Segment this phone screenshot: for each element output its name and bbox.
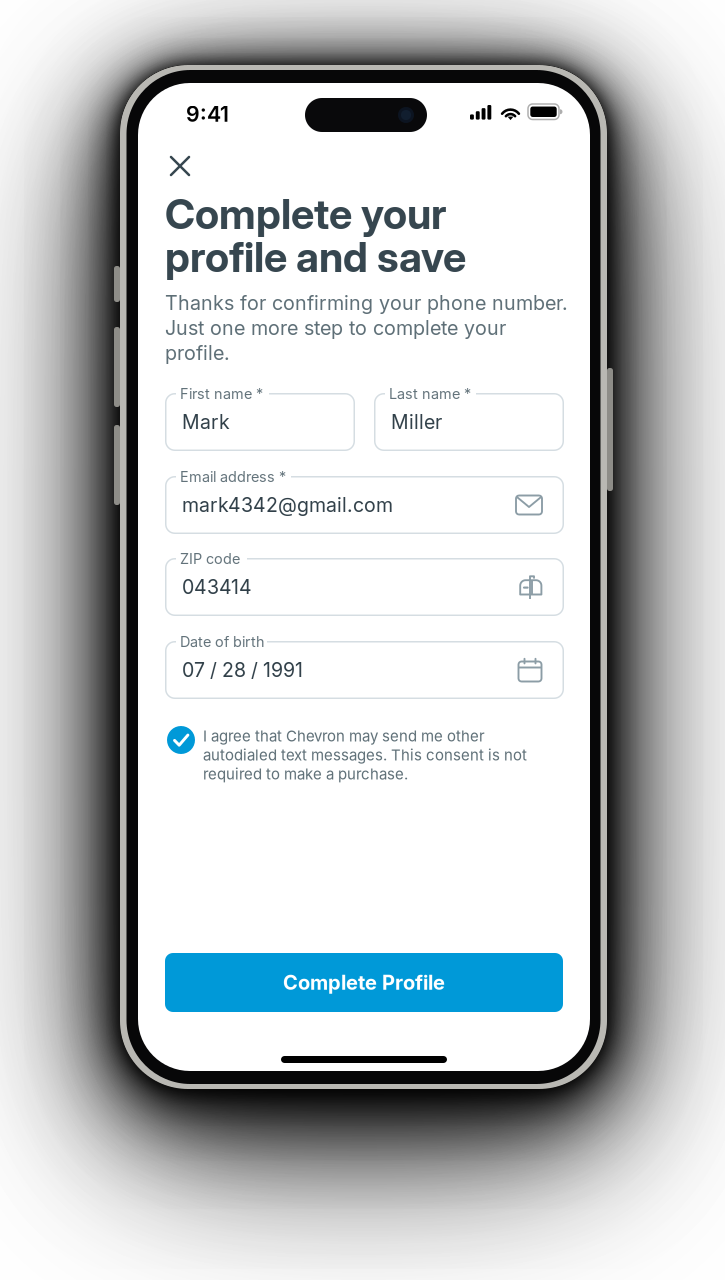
staticText: profile and save [165, 232, 466, 282]
staticText: 07 / 28 / 1991 [182, 658, 303, 682]
staticText: Email address * [180, 468, 286, 485]
button[interactable]: I agree that Chevron may send me other [167, 726, 566, 801]
staticText: Miller [391, 410, 442, 434]
button[interactable]: 043414 [165, 558, 564, 616]
staticText: Thanks for confirming your phone number. [165, 291, 568, 315]
staticText: First name * [180, 385, 263, 402]
button[interactable]: Miller [374, 393, 564, 451]
staticText: Last name * [389, 385, 471, 402]
staticText: Complete your [165, 189, 447, 239]
staticText: 043414 [182, 575, 252, 599]
button[interactable]: Close [160, 145, 210, 189]
staticText: mark4342@gmail.com [182, 493, 393, 517]
staticText: Mark [182, 410, 230, 434]
staticText: Just one more step to complete your [165, 316, 506, 340]
staticText: Complete Profile [283, 970, 445, 995]
staticText: profile. [165, 341, 230, 365]
staticText: 9:41 [186, 101, 229, 127]
button[interactable]: 07 / 28 / 1991 [165, 641, 564, 699]
button[interactable]: Mark [165, 393, 355, 451]
button[interactable]: mark4342@gmail.com [165, 476, 564, 534]
staticText: Date of birth [180, 633, 265, 650]
staticText: I agree that Chevron may send me other [203, 727, 485, 745]
staticText: required to make a purchase. [203, 765, 408, 783]
staticText: autodialed text messages. This consent i… [203, 746, 527, 764]
staticText: ZIP code [180, 550, 240, 567]
button[interactable]: Complete Profile [165, 953, 563, 1012]
